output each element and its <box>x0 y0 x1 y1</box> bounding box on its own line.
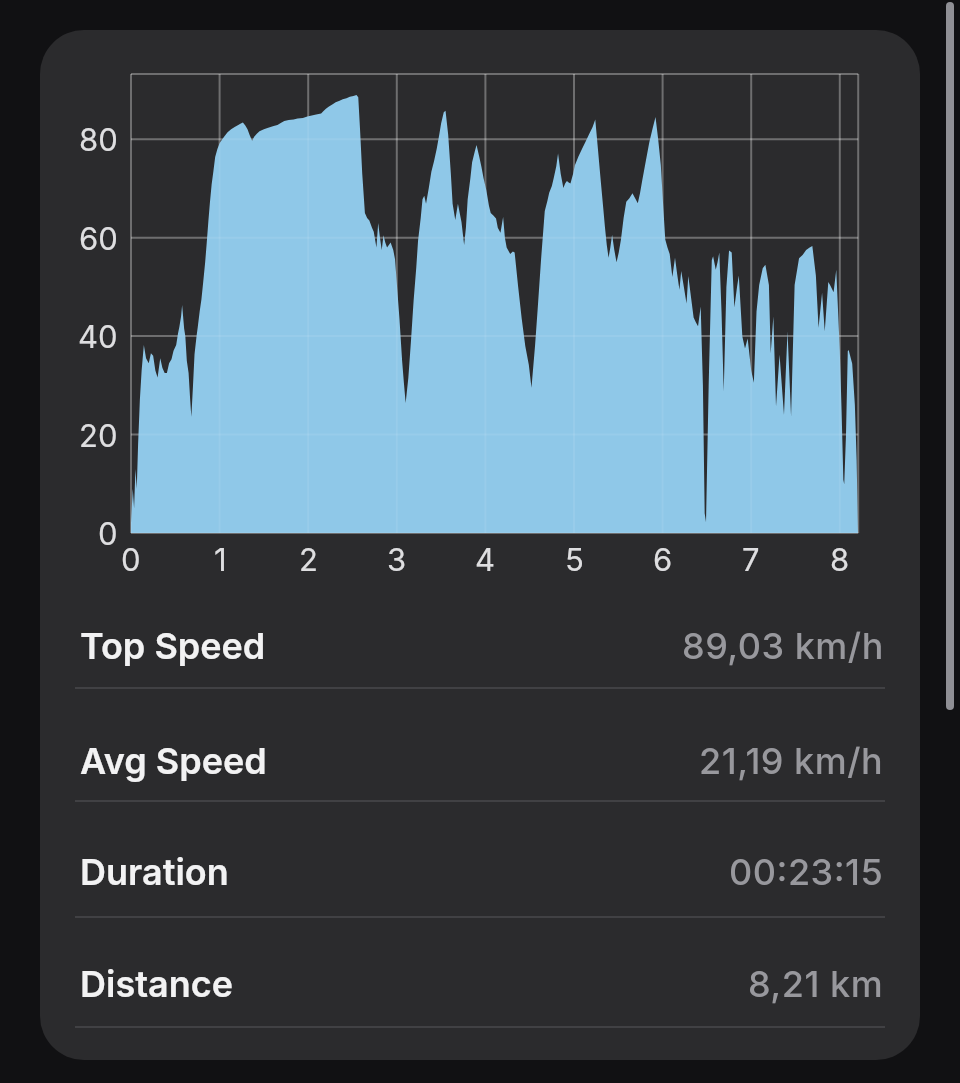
staticText: 3 <box>387 541 407 577</box>
staticText: 0 <box>121 541 141 577</box>
button[interactable]: Top Speed <box>80 614 884 678</box>
staticText: 21,19 km/h <box>699 739 884 783</box>
staticText: 0 <box>98 515 118 551</box>
staticText: 80 <box>79 121 118 157</box>
button[interactable]: Duration <box>80 840 884 904</box>
staticText: 8 <box>830 541 850 577</box>
staticText: 40 <box>78 318 118 354</box>
staticText: Avg Speed <box>80 739 267 783</box>
staticText: 5 <box>565 541 584 577</box>
staticText: 2 <box>299 541 318 577</box>
staticText: 60 <box>79 220 118 256</box>
button[interactable]: Avg Speed <box>80 729 884 793</box>
staticText: 89,03 km/h <box>682 624 884 668</box>
staticText: Distance <box>80 962 234 1006</box>
staticText: 6 <box>653 541 673 577</box>
staticText: 00:23:15 <box>729 850 884 894</box>
staticText: 7 <box>742 541 760 577</box>
staticText: 1 <box>214 541 227 577</box>
button[interactable]: Distance <box>80 952 884 1016</box>
staticText: 4 <box>475 541 496 577</box>
staticText: 8,21 km <box>748 962 884 1006</box>
staticText: 20 <box>79 417 118 453</box>
staticText: Duration <box>80 850 229 894</box>
staticText: Top Speed <box>80 624 266 668</box>
